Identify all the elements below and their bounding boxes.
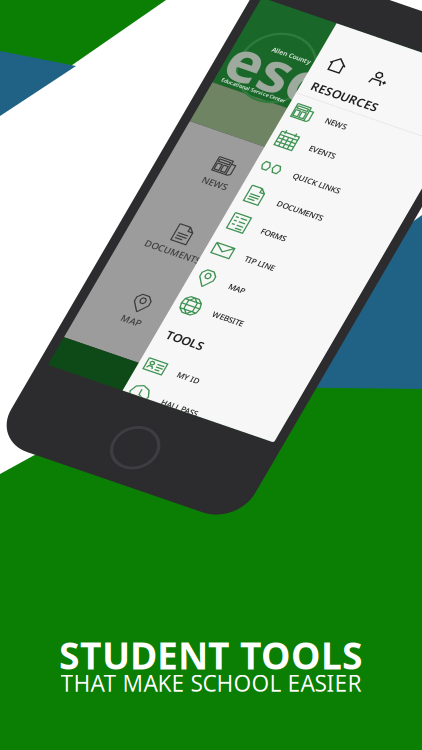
staticText: EVENTS: [401, 123, 422, 134]
button[interactable]: NEWS: [361, 81, 422, 113]
staticText: NEWS: [323, 188, 349, 201]
button[interactable]: MAP: [296, 322, 370, 362]
staticText: Allen County: [318, 42, 359, 50]
staticText: Educational Service Center: [289, 88, 356, 96]
button[interactable]: FORMS: [361, 209, 422, 241]
staticText: MAP: [323, 348, 344, 361]
button[interactable]: DOCUMENTS: [297, 242, 371, 282]
staticText: MY ID: [401, 385, 422, 396]
button[interactable]: MY ID: [361, 375, 422, 407]
button[interactable]: NEWS: [299, 162, 373, 202]
button[interactable]: DOCUMENTS: [361, 177, 422, 209]
staticText: FORMS: [401, 219, 422, 230]
button[interactable]: WEBSITE: [361, 305, 422, 337]
button[interactable]: Account: [413, 26, 422, 54]
staticText: RESOURCES: [371, 60, 422, 76]
staticText: esc: [284, 27, 378, 105]
button[interactable]: Home: [369, 26, 397, 54]
staticText: STUDENT TOOLS: [59, 630, 363, 680]
button[interactable]: TIP LINE: [361, 241, 422, 273]
staticText: DOCUMENTS: [401, 187, 422, 198]
staticText: THAT MAKE SCHOOL EASIER: [60, 668, 361, 698]
button[interactable]: MAP: [361, 273, 422, 305]
